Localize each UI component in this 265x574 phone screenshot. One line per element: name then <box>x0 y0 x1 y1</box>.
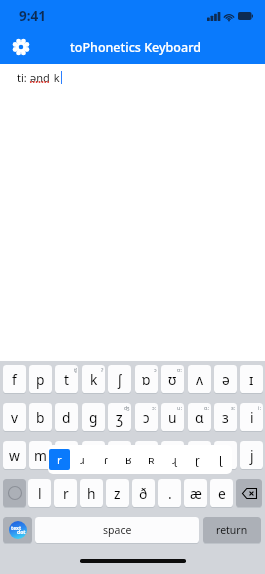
button[interactable]: ɫ <box>135 441 158 469</box>
button[interactable]: . <box>158 479 181 507</box>
button[interactable]: return <box>203 517 261 543</box>
button[interactable]: r <box>54 479 77 507</box>
staticText: . <box>168 484 172 503</box>
button[interactable]: ɒ <box>135 365 158 393</box>
staticText: p <box>36 370 45 389</box>
button[interactable]: ʀ <box>141 449 162 470</box>
button[interactable]: l <box>28 479 51 507</box>
button[interactable]: ð <box>132 479 155 507</box>
button[interactable]: ɻ <box>164 449 185 470</box>
button[interactable]: ʍ <box>161 441 184 469</box>
staticText: ɱ <box>193 446 206 465</box>
staticText: ʊː <box>177 366 183 373</box>
staticText: ʁ <box>125 452 132 468</box>
button[interactable]: d <box>55 403 78 431</box>
staticText: j <box>250 446 254 465</box>
button[interactable]: z <box>106 479 129 507</box>
button[interactable]: ʃ <box>108 365 131 393</box>
staticText: ɪ <box>249 370 254 389</box>
button[interactable]: Backspace <box>236 479 262 507</box>
staticText: u <box>168 408 177 427</box>
staticText: t <box>64 370 69 389</box>
staticText: r <box>64 446 70 465</box>
button[interactable]: ɽ <box>187 449 208 470</box>
staticText: k <box>90 370 98 389</box>
staticText: ʤ <box>124 404 130 411</box>
button[interactable]: æ <box>184 479 207 507</box>
button[interactable]: f <box>3 365 26 393</box>
staticText: ɔː <box>152 404 157 411</box>
staticText: ɾ <box>104 452 108 468</box>
staticText: k <box>51 70 60 85</box>
staticText: toPhonetics Keyboard <box>70 39 201 56</box>
staticText: ð <box>139 484 148 503</box>
button[interactable]: m <box>29 441 52 469</box>
staticText: ɔ <box>143 408 150 427</box>
button[interactable]: h <box>80 479 103 507</box>
staticText: ʧ <box>74 366 77 373</box>
staticText: ɜ <box>222 408 229 427</box>
staticText: ɽ <box>195 452 200 468</box>
button[interactable]: i <box>240 403 263 431</box>
staticText: ʌ <box>196 370 204 389</box>
button[interactable]: ʒ <box>108 403 131 431</box>
button[interactable]: ʌ <box>188 365 211 393</box>
button[interactable]: p <box>29 365 52 393</box>
button[interactable]: Settings <box>11 37 31 57</box>
button[interactable]: Shift <box>3 479 26 507</box>
staticText: ʒ <box>116 408 123 427</box>
button[interactable]: w <box>3 441 26 469</box>
button[interactable]: e <box>210 479 233 507</box>
button[interactable]: j <box>240 441 263 469</box>
button[interactable]: ɱ <box>188 441 211 469</box>
button[interactable]: u <box>161 403 184 431</box>
button[interactable]: ɹ <box>72 449 93 470</box>
button[interactable]: space <box>35 517 199 543</box>
button[interactable]: ʁ <box>118 449 139 470</box>
button[interactable]: t <box>55 365 78 393</box>
staticText: ɜː <box>231 404 236 411</box>
button[interactable]: ɾ <box>95 449 116 470</box>
staticText: b <box>36 408 45 427</box>
button[interactable]: ɑ <box>188 403 211 431</box>
button[interactable]: r <box>49 449 70 470</box>
staticText: w <box>9 446 20 465</box>
staticText: text <box>11 525 22 532</box>
staticText: ʍ <box>167 446 178 465</box>
staticText: g <box>89 408 98 427</box>
button[interactable]: ɪ <box>240 365 263 393</box>
button[interactable]: g <box>82 403 105 431</box>
button[interactable]: v <box>3 403 26 431</box>
button[interactable]: ə <box>214 365 237 393</box>
staticText: ɔ <box>154 366 157 373</box>
button[interactable]: ʊ <box>161 365 184 393</box>
staticText: e <box>218 484 226 503</box>
button[interactable]: b <box>29 403 52 431</box>
staticText: v <box>11 408 19 427</box>
button[interactable]: toPhonetics <box>3 517 32 543</box>
button[interactable]: ɭ <box>210 449 231 470</box>
staticText: return <box>216 523 248 537</box>
button[interactable]: r <box>55 441 78 469</box>
button[interactable]: n <box>82 441 105 469</box>
staticText: ti: <box>17 70 30 85</box>
staticText: h <box>87 484 96 503</box>
staticText: ʀ <box>148 452 155 468</box>
button[interactable]: ŋ <box>108 441 131 469</box>
staticText: dot <box>17 529 26 536</box>
staticText: 9:41 <box>19 7 46 25</box>
staticText: ɭ <box>219 452 222 468</box>
staticText: z <box>114 484 121 503</box>
button[interactable]: ɔ <box>135 403 158 431</box>
staticText: m <box>34 446 47 465</box>
button[interactable]: ɜ <box>214 403 237 431</box>
staticText: iː <box>258 404 262 411</box>
staticText: ʃ <box>118 370 122 389</box>
button[interactable]: k <box>82 365 105 393</box>
button[interactable]: ɲ <box>214 441 237 469</box>
staticText: d <box>62 408 71 427</box>
staticText: i <box>250 408 254 427</box>
